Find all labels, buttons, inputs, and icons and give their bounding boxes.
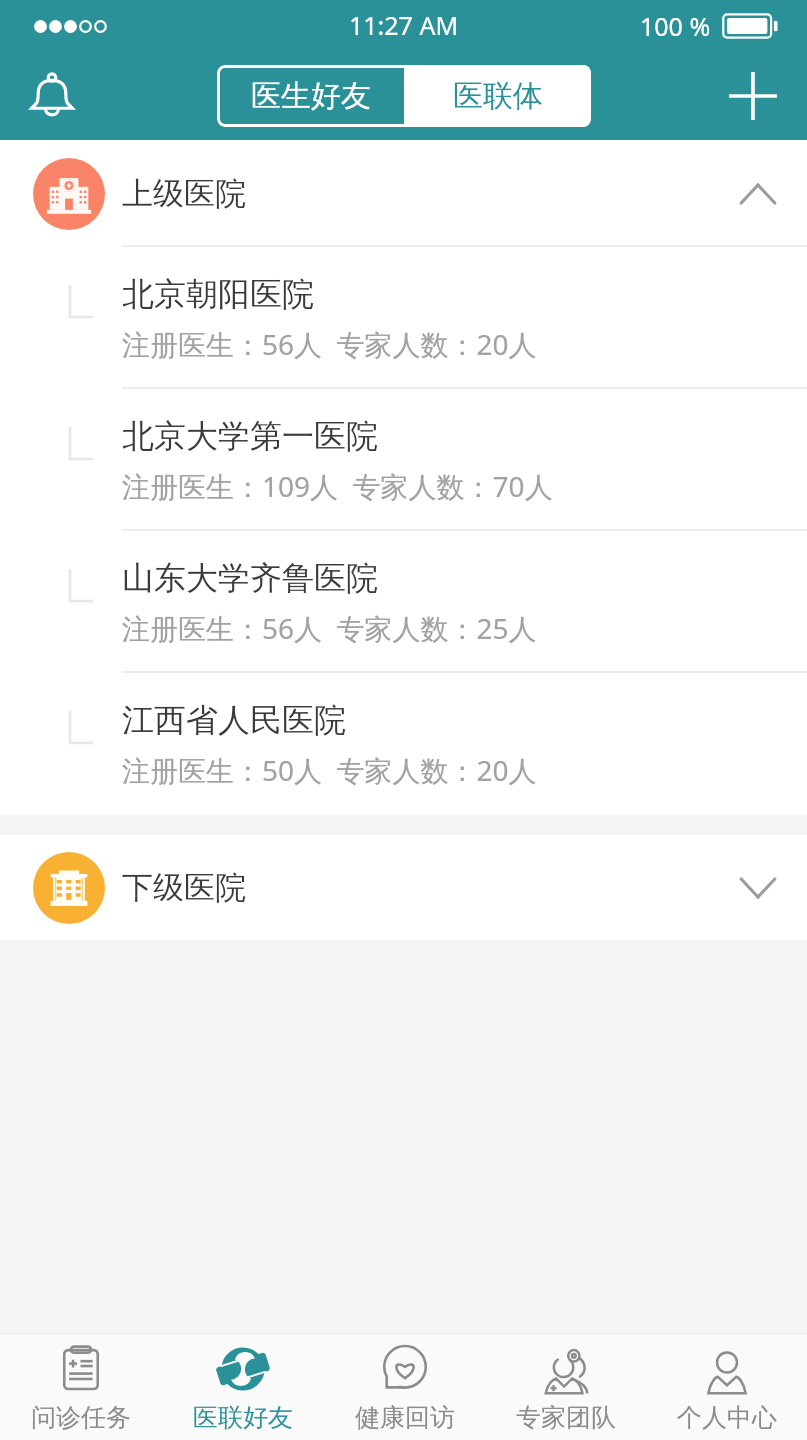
button[interactable]: Add [715,58,791,134]
staticText: 医联好友 [193,1402,293,1433]
button[interactable]: 山东大学齐鲁医院 [0,531,807,673]
staticText: 医生好友 [251,77,371,115]
staticText: 注册医生：56人 专家人数：25人 [122,609,537,647]
button[interactable]: Notifications [14,58,90,134]
button[interactable]: 北京大学第一医院 [0,389,807,531]
button[interactable]: 医联好友 [162,1334,324,1440]
button[interactable]: 健康回访 [324,1334,485,1440]
staticText: 个人中心 [677,1402,777,1433]
staticText: 100 % [640,9,711,43]
button[interactable]: 下级医院 [0,835,807,940]
staticText: 专家团队 [516,1402,616,1433]
button[interactable]: 问诊任务 [0,1334,162,1440]
staticText: 上级医院 [122,174,246,213]
staticText: 11:27 AM [349,8,459,42]
staticText: 北京朝阳医院 [122,274,314,314]
button[interactable]: 个人中心 [646,1334,807,1440]
staticText: 注册医生：109人 专家人数：70人 [122,467,553,505]
button[interactable]: 医生好友 [217,65,404,127]
staticText: 注册医生：56人 专家人数：20人 [122,325,537,363]
staticText: 问诊任务 [31,1402,131,1433]
button[interactable]: 北京朝阳医院 [0,247,807,389]
staticText: 北京大学第一医院 [122,416,378,456]
button[interactable]: 医联体 [404,65,591,127]
button[interactable]: 江西省人民医院 [0,673,807,815]
staticText: 医联体 [453,77,543,115]
staticText: 江西省人民医院 [122,700,346,740]
staticText: 注册医生：50人 专家人数：20人 [122,751,537,789]
staticText: 山东大学齐鲁医院 [122,558,378,598]
button[interactable]: 专家团队 [485,1334,646,1440]
button[interactable]: 上级医院 [0,140,807,247]
staticText: 下级医院 [122,868,246,907]
staticText: 健康回访 [355,1402,455,1433]
